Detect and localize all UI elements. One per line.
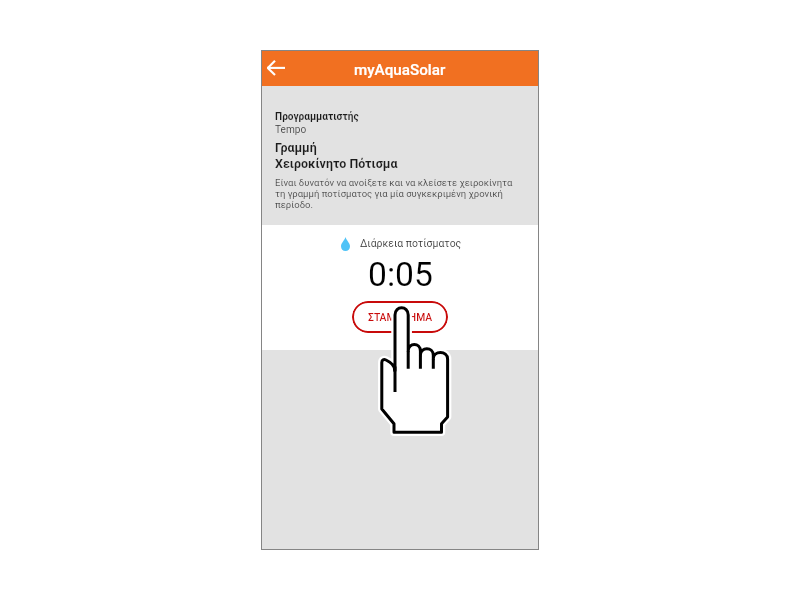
- staticText: 0:05: [368, 255, 433, 294]
- staticText: Προγραμματιστής: [275, 111, 359, 123]
- staticText: ΣΤΑΜΑΤΗΜΑ: [368, 311, 433, 323]
- staticText: Χειροκίνητο Πότισμα: [275, 156, 398, 171]
- staticText: Είναι δυνατόν να ανοίξετε και να κλείσετ…: [275, 177, 519, 210]
- button[interactable]: ΣΤΑΜΑΤΗΜΑ: [352, 301, 448, 333]
- staticText: myAquaSolar: [354, 61, 446, 79]
- staticText: Γραμμή: [275, 140, 317, 155]
- staticText: Tempo: [275, 124, 307, 136]
- staticText: Διάρκεια ποτίσματος: [360, 237, 462, 249]
- button[interactable]: Back: [263, 56, 287, 80]
